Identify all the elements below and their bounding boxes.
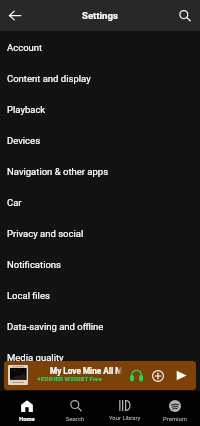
staticText: EDIFIER W200BT Free (41, 375, 102, 382)
button[interactable]: Account (0, 32, 200, 63)
staticText: Home (19, 416, 35, 423)
button[interactable]: Play (174, 368, 188, 382)
button[interactable]: Playback (0, 94, 200, 125)
staticText: Playback (7, 104, 46, 115)
button[interactable]: Notifications (0, 249, 200, 280)
staticText: Privacy and social (7, 228, 84, 239)
button[interactable]: Premium (150, 391, 200, 426)
button[interactable]: Add to playlist (150, 368, 166, 384)
staticText: Navigation & other apps (7, 166, 109, 177)
button[interactable]: Navigation & other apps (0, 156, 200, 187)
staticText: Search (66, 416, 85, 423)
button[interactable]: Connect to a device (128, 367, 145, 384)
staticText: Media quality (7, 352, 64, 363)
button[interactable]: Media quality (0, 342, 200, 373)
button[interactable]: Search (51, 391, 100, 426)
button[interactable]: Content and display (0, 63, 200, 94)
button[interactable]: Local files (0, 280, 200, 311)
staticText: Car (7, 197, 22, 208)
staticText: My Love Mine All Mine (50, 366, 122, 376)
staticText: Devices (7, 135, 41, 146)
staticText: Your Library (109, 415, 141, 422)
button[interactable]: Home (2, 391, 51, 426)
button[interactable]: Privacy and social (0, 218, 200, 249)
button[interactable]: Back (0, 0, 29, 31)
staticText: Settings (82, 10, 118, 21)
button[interactable]: Car (0, 187, 200, 218)
button[interactable]: Search (169, 0, 200, 31)
staticText: Account (7, 42, 43, 53)
staticText: Data-saving and offline (7, 321, 104, 332)
staticText: Local files (7, 290, 50, 301)
button[interactable]: Data-saving and offline (0, 311, 200, 342)
staticText: Content and display (7, 73, 91, 84)
button[interactable]: Your Library (100, 391, 150, 426)
staticText: Premium (163, 416, 187, 423)
button[interactable]: My Love Mine All Mine (4, 361, 196, 390)
staticText: Notifications (7, 259, 62, 270)
button[interactable]: Devices (0, 125, 200, 156)
